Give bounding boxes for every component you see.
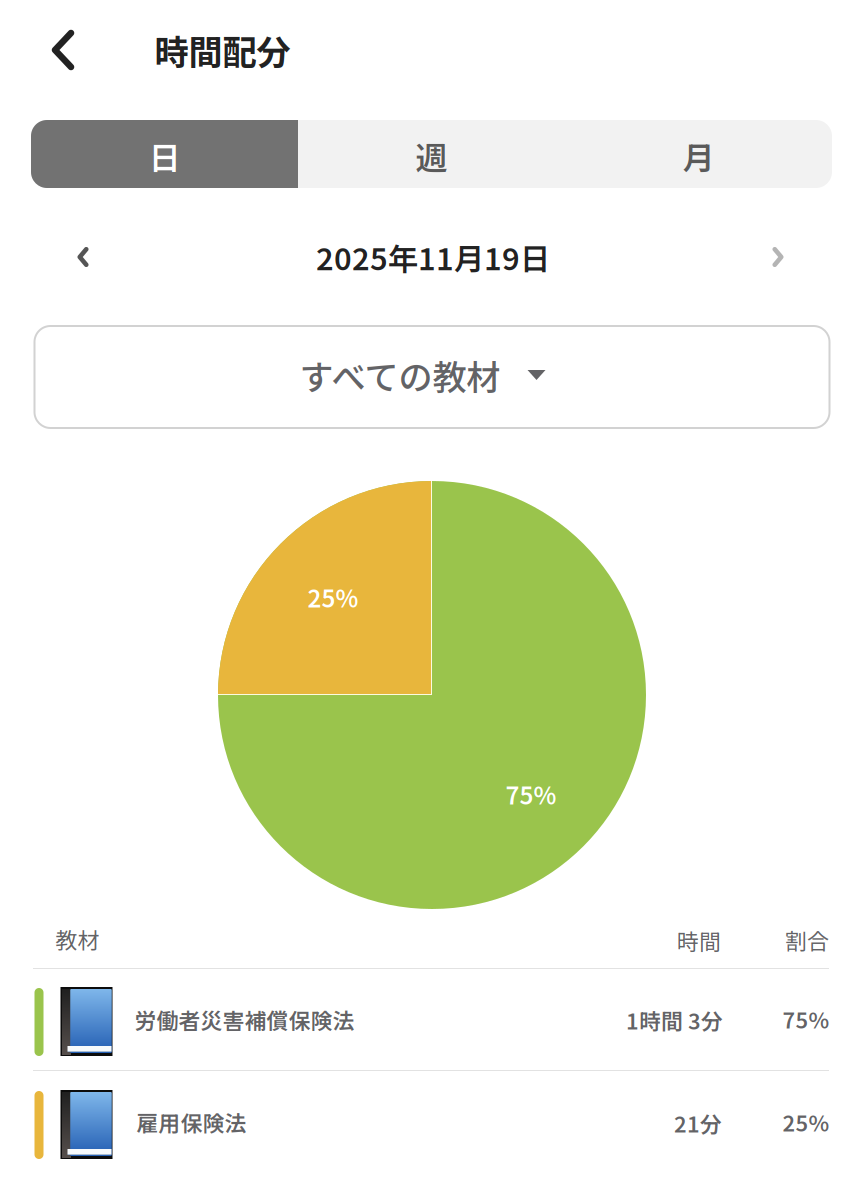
staticText: 日	[148, 133, 180, 179]
staticText: 教材	[55, 923, 99, 955]
button[interactable]: すべての教材	[34, 326, 829, 428]
staticText: すべての教材	[299, 350, 500, 400]
staticText: 月	[682, 133, 714, 179]
staticText: 1時間 3分	[626, 1004, 723, 1036]
staticText: 21分	[674, 1107, 722, 1139]
staticText: 25%	[307, 580, 358, 614]
staticText: 75%	[782, 1003, 829, 1035]
button[interactable]: 雇用保険法	[0, 1071, 863, 1173]
staticText: 時間	[677, 925, 721, 956]
staticText: 労働者災害補償保険法	[134, 1004, 354, 1035]
staticText: 週	[415, 133, 447, 179]
button[interactable]: 日	[31, 122, 298, 190]
button[interactable]: 労働者災害補償保険法	[0, 969, 863, 1071]
staticText: 雇用保険法	[136, 1106, 246, 1138]
staticText: 時間配分	[154, 25, 290, 75]
staticText: 割合	[785, 924, 829, 956]
staticText: 75%	[505, 777, 556, 811]
staticText: 25%	[782, 1106, 829, 1138]
button[interactable]: Back	[15, 2, 111, 98]
button[interactable]: 月	[565, 122, 832, 190]
button[interactable]: Previous day	[46, 220, 120, 294]
staticText: 2025年11月19日	[316, 235, 550, 279]
button[interactable]: 週	[298, 122, 565, 190]
button[interactable]: Next day	[741, 220, 815, 294]
